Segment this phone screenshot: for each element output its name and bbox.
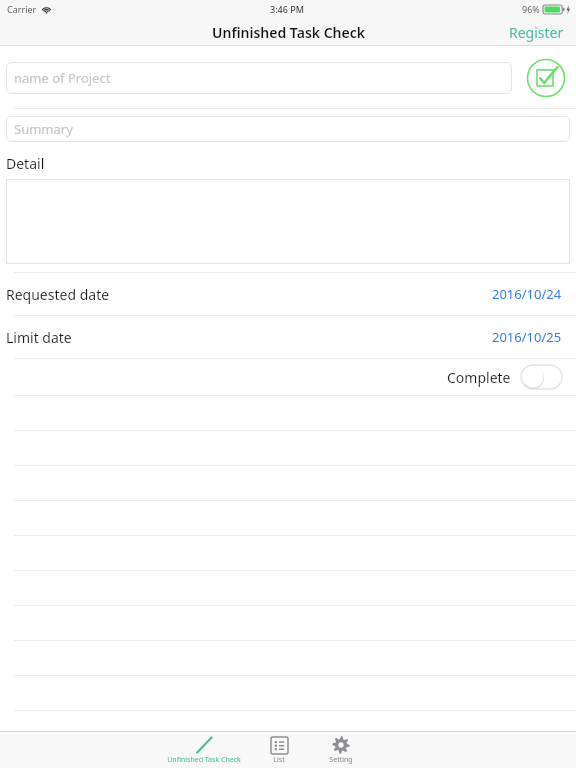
button[interactable]: Unfinished Task Check xyxy=(160,732,248,768)
staticText: Limit date xyxy=(6,328,72,347)
button[interactable]: name of Project xyxy=(6,62,512,94)
staticText: Unfinished Task Check xyxy=(167,755,241,765)
staticText: 96% xyxy=(522,3,540,15)
staticText: Requested date xyxy=(6,285,110,304)
staticText: Detail xyxy=(6,154,45,173)
staticText: Setting xyxy=(329,755,353,765)
staticText: 2016/10/24 xyxy=(492,285,562,303)
staticText: Summary xyxy=(14,120,73,138)
button[interactable]: Register xyxy=(497,18,576,46)
button[interactable]: Complete toggle xyxy=(521,365,562,389)
button[interactable]: Complete xyxy=(0,359,576,395)
staticText: List xyxy=(273,755,285,765)
button[interactable] xyxy=(6,179,570,264)
staticText: name of Project xyxy=(14,69,111,87)
staticText: 3:46 PM xyxy=(270,3,304,15)
button[interactable]: Limit date xyxy=(0,316,576,358)
button[interactable]: Requested date xyxy=(0,273,576,315)
button[interactable]: List xyxy=(248,732,310,768)
button[interactable]: Confirm task xyxy=(520,58,572,98)
staticText: Complete xyxy=(447,368,511,387)
staticText: Register xyxy=(509,23,564,42)
button[interactable]: Summary xyxy=(6,116,570,142)
staticText: Unfinished Task Check xyxy=(212,23,365,42)
staticText: 2016/10/25 xyxy=(492,328,562,346)
button[interactable]: Setting xyxy=(310,732,372,768)
staticText: Carrier xyxy=(7,3,37,15)
